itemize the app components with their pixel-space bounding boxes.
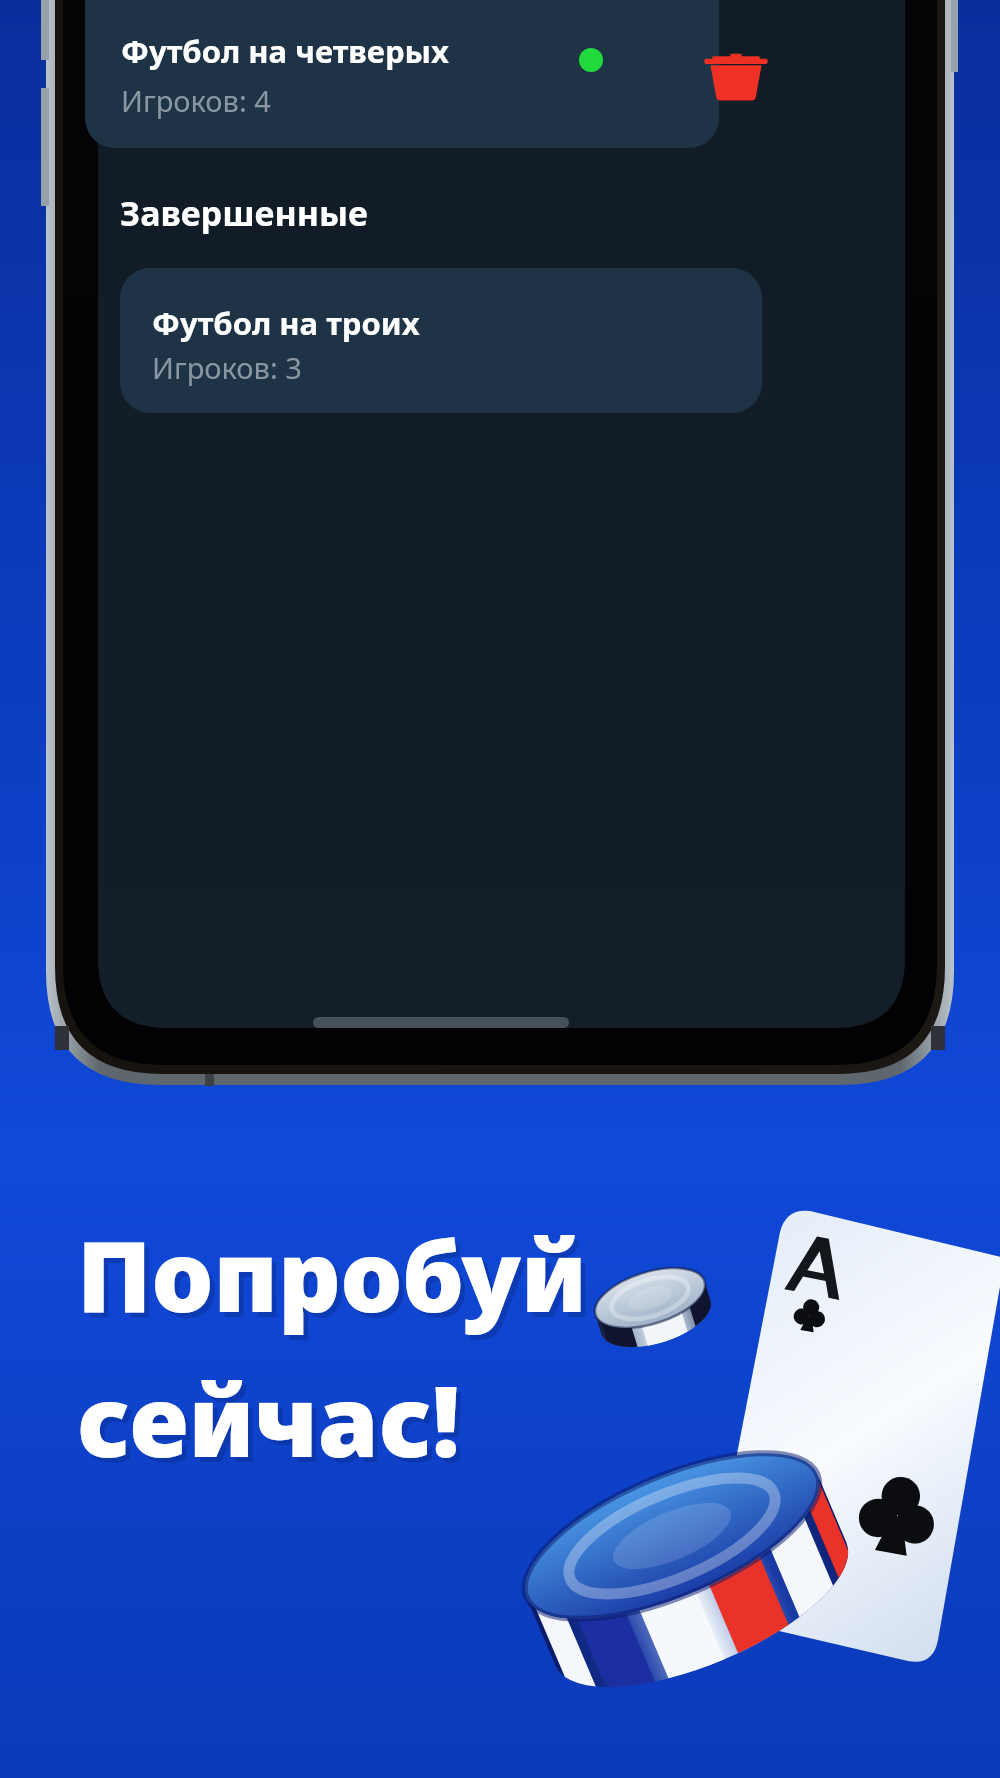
button[interactable]: Футбол на четверых	[85, 0, 719, 148]
staticText: Попробуй	[77, 1207, 587, 1340]
staticText: Попробуй	[82, 1212, 592, 1345]
staticText: сейчас!	[77, 1352, 461, 1485]
staticText: Футбол на троих	[152, 302, 420, 344]
staticText: Игроков: 3	[152, 348, 302, 387]
staticText: Футбол на четверых	[121, 30, 449, 72]
staticText: Завершенные	[120, 190, 368, 236]
button[interactable]: Футбол на троих	[120, 268, 762, 413]
button[interactable]: Удалить	[700, 40, 772, 112]
staticText: Игроков: 4	[121, 81, 271, 120]
staticText: сейчас!	[82, 1357, 466, 1490]
